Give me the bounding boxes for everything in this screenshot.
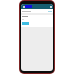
button[interactable] bbox=[21, 9, 53, 13]
button[interactable]: Menu bbox=[22, 5, 25, 8]
